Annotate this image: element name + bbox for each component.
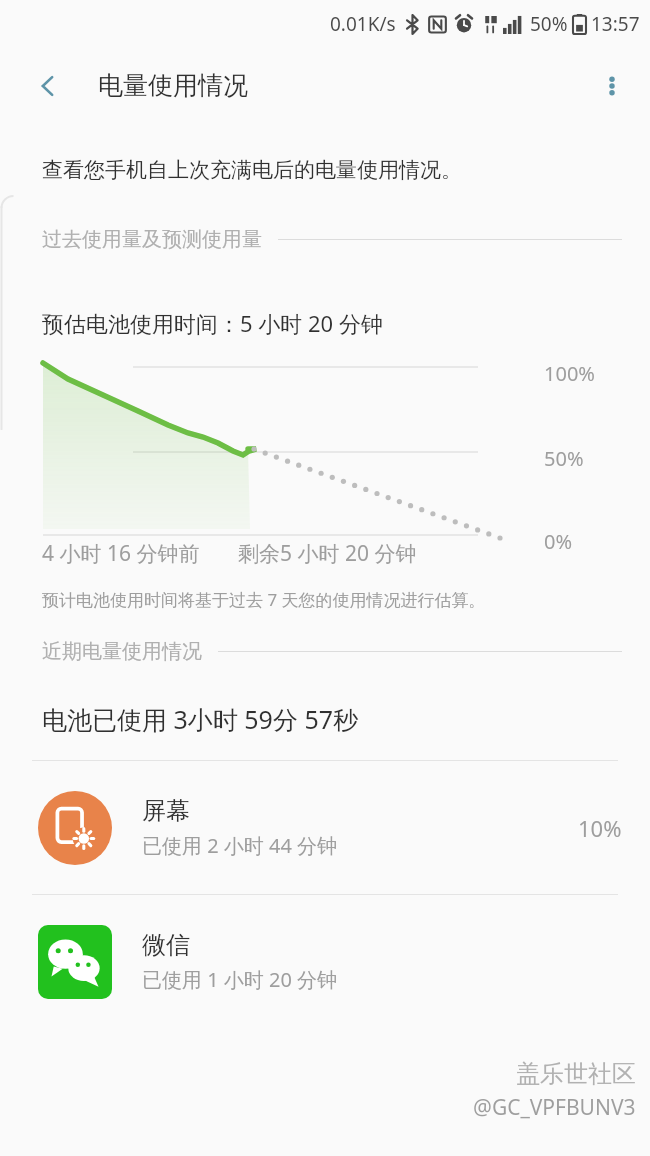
staticText: 50% <box>530 11 568 37</box>
staticText: 预计电池使用时间将基于过去 7 天您的使用情况进行估算。 <box>42 588 486 611</box>
staticText: 10% <box>578 813 622 843</box>
staticText: @GC_VPFBUNV3 <box>473 1093 636 1122</box>
staticText: 50% <box>544 445 584 467</box>
button[interactable]: 屏幕 <box>0 761 650 894</box>
staticText: 盖乐世社区 <box>516 1059 636 1089</box>
staticText: 电量使用情况 <box>98 70 248 101</box>
staticText: 电池已使用 3小时 59分 57秒 <box>42 702 359 736</box>
staticText: 13:57 <box>591 11 640 37</box>
staticText: 剩余5 小时 20 分钟 <box>238 539 417 568</box>
staticText: 近期电量使用情况 <box>42 639 202 664</box>
staticText: 预估电池使用时间：5 小时 20 分钟 <box>42 308 383 338</box>
button[interactable]: 微信 <box>0 895 650 1028</box>
button[interactable]: More options <box>588 62 636 110</box>
staticText: 已使用 1 小时 20 分钟 <box>142 966 338 993</box>
staticText: 已使用 2 小时 44 分钟 <box>142 832 338 859</box>
staticText: 0% <box>544 528 573 550</box>
staticText: 过去使用量及预测使用量 <box>42 227 262 252</box>
staticText: 0.01K/s <box>330 11 396 37</box>
staticText: 4 小时 16 分钟前 <box>42 539 200 568</box>
button[interactable]: Back <box>26 64 70 108</box>
staticText: 100% <box>544 360 595 382</box>
staticText: 屏幕 <box>142 796 190 826</box>
staticText: 微信 <box>142 930 190 960</box>
staticText: 查看您手机自上次充满电后的电量使用情况。 <box>42 157 462 183</box>
